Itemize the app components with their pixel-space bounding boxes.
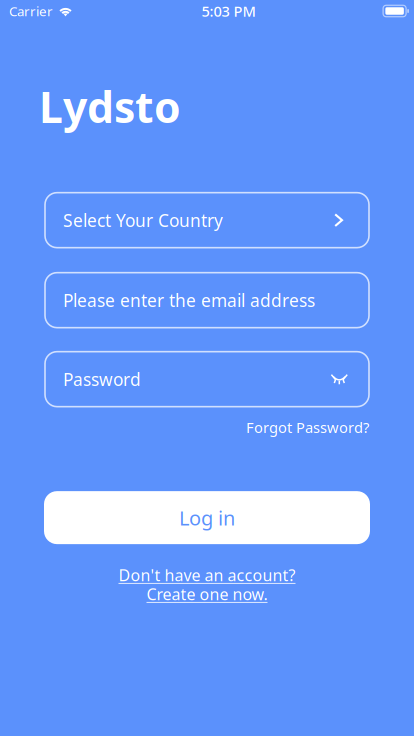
button[interactable]: Password (45, 352, 369, 407)
staticText: Don't have an account? (118, 564, 295, 586)
button[interactable]: Log in (44, 491, 370, 544)
button[interactable]: Show password (331, 374, 348, 384)
button[interactable]: Don't have an account? (118, 567, 295, 583)
staticText: Please enter the email address (63, 289, 315, 312)
staticText: Select Your Country (63, 209, 223, 232)
button[interactable]: Create one now. (146, 586, 267, 602)
staticText: Lydsto (39, 78, 181, 135)
staticText: Forgot Password? (246, 418, 369, 437)
staticText: Password (63, 368, 141, 391)
staticText: Log in (179, 504, 235, 531)
staticText: Create one now. (146, 583, 267, 605)
staticText: Carrier (9, 2, 53, 20)
button[interactable]: Select Your Country (45, 193, 369, 248)
button[interactable]: Please enter the email address (45, 273, 369, 328)
button[interactable]: Forgot Password? (246, 418, 369, 437)
staticText: 5:03 PM (201, 1, 255, 21)
